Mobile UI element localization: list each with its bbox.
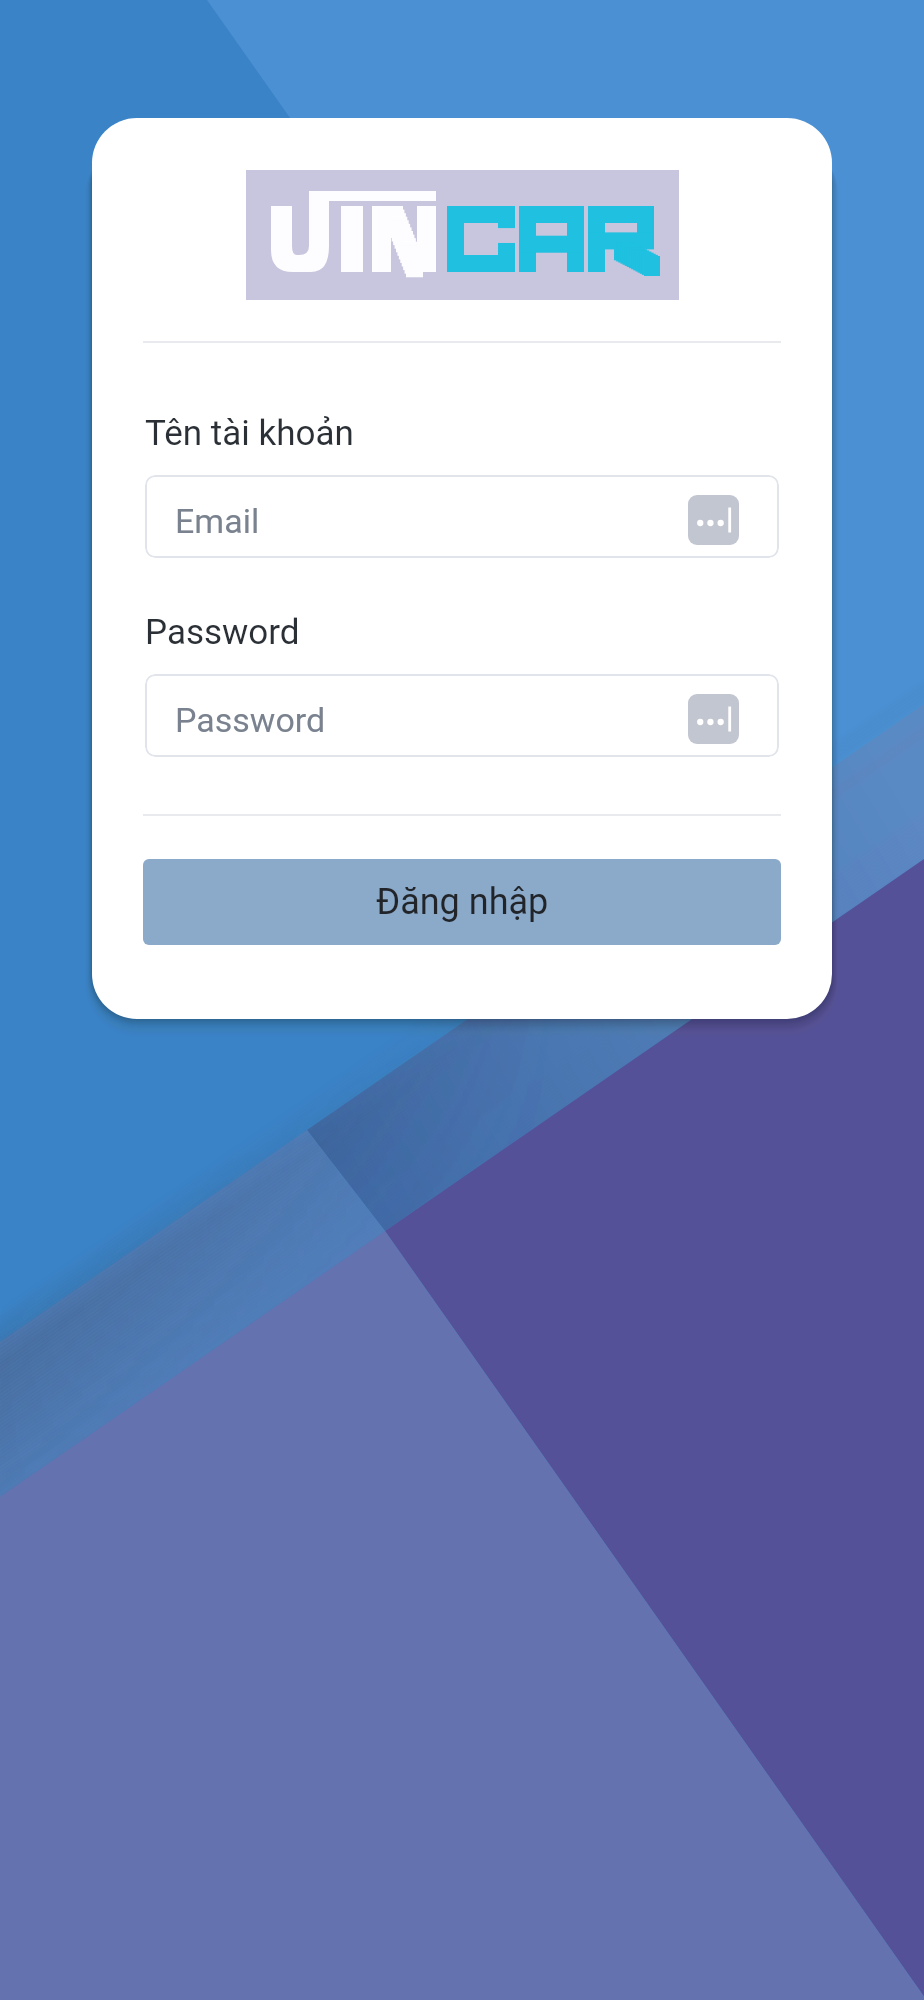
staticText: Đăng nhập — [376, 881, 549, 923]
other: Input field icon — [688, 694, 739, 744]
button[interactable]: Đăng nhập — [143, 859, 781, 945]
staticText: Password — [145, 612, 300, 653]
other: Input field icon — [688, 495, 739, 545]
staticText: Email — [175, 501, 260, 541]
button[interactable]: Password — [145, 674, 779, 757]
staticText: Password — [175, 700, 326, 740]
button[interactable]: Email — [145, 475, 779, 558]
staticText: Tên tài khoản — [145, 413, 354, 454]
